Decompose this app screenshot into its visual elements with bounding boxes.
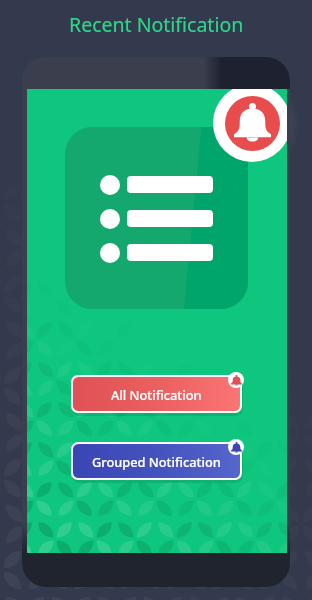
button[interactable]: All Notification xyxy=(73,377,240,411)
staticText: Grouped Notification xyxy=(92,453,221,470)
button[interactable]: Badge xyxy=(228,372,244,388)
button[interactable]: Notifications xyxy=(213,89,287,162)
button[interactable] xyxy=(65,127,248,309)
staticText: Recent Notification xyxy=(69,11,244,38)
button[interactable]: Grouped Notification xyxy=(73,444,240,478)
button[interactable]: Badge xyxy=(228,439,244,455)
staticText: All Notification xyxy=(111,386,202,403)
